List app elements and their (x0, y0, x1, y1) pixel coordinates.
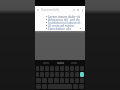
button[interactable]: Key (36, 84, 41, 89)
button[interactable]: Incididunt ut labore et dolore magna ali (35, 21, 85, 24)
staticText: Document title (41, 8, 60, 12)
button[interactable]: Key (54, 78, 59, 83)
button[interactable]: Key (70, 72, 74, 77)
button[interactable]: Key (75, 72, 79, 77)
button[interactable]: Key (48, 78, 53, 83)
button[interactable]: Redo (76, 8, 80, 12)
button[interactable]: Key (45, 72, 49, 77)
staticText: Lorem ipsum dolor sit amet, consectetur (48, 15, 85, 18)
button[interactable]: More options (80, 8, 84, 12)
button[interactable]: Key (50, 72, 54, 77)
staticText: Exercitation ulla (48, 27, 72, 30)
button[interactable]: Exercitation ulla (35, 27, 85, 30)
button[interactable]: Key (60, 78, 64, 83)
button[interactable]: Lorem ipsum dolor sit amet, consectetur (35, 15, 85, 18)
button[interactable]: Key (60, 66, 64, 71)
button[interactable]: Key (65, 66, 69, 71)
button[interactable]: Undo (72, 8, 76, 12)
button[interactable]: Key (65, 72, 69, 77)
button[interactable]: Key (79, 84, 84, 89)
button[interactable]: Key (75, 78, 79, 83)
button[interactable]: Key (75, 66, 79, 71)
button[interactable]: Key (70, 66, 74, 71)
button[interactable]: Key (36, 66, 39, 71)
button[interactable]: Key (80, 66, 84, 71)
button[interactable]: Key (36, 78, 41, 83)
button[interactable]: Key (55, 72, 59, 77)
button[interactable]: Back (36, 8, 40, 12)
button[interactable]: Key (60, 72, 64, 77)
button[interactable]: Key (80, 72, 84, 77)
staticText: Adipiscing elit, sed do eiusmod tempor i (48, 18, 85, 21)
button[interactable]: Key (42, 78, 47, 83)
button[interactable]: Key (65, 78, 69, 83)
button[interactable]: Key (40, 66, 44, 71)
button[interactable]: Adipiscing elit, sed do eiusmod tempor i (35, 18, 85, 21)
button[interactable]: Key (73, 84, 78, 89)
button[interactable]: Key (70, 78, 74, 83)
button[interactable]: Key (50, 66, 54, 71)
staticText: Ut enim ad minim veniam, quis nostr (48, 24, 85, 27)
button[interactable]: Key (80, 78, 84, 83)
button[interactable]: Key (42, 84, 47, 89)
button[interactable]: Key (36, 72, 39, 77)
button[interactable]: Key (45, 66, 49, 71)
button[interactable]: Ut enim ad minim veniam, quis nostr (35, 24, 85, 27)
button[interactable]: Key (55, 66, 59, 71)
button[interactable]: Key (40, 72, 44, 77)
staticText: Incididunt ut labore et dolore magna ali (48, 21, 85, 24)
